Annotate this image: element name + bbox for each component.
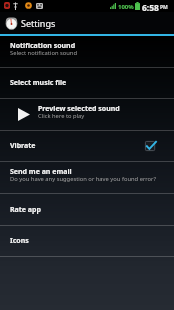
button[interactable]: Icons: [0, 226, 174, 256]
staticText: Preview selected sound: [38, 104, 120, 114]
staticText: Click here to play: [38, 112, 85, 120]
staticText: Send me an email: [10, 167, 72, 177]
staticText: PM: [160, 4, 168, 11]
button[interactable]: Rate app: [0, 194, 174, 225]
staticText: Icons: [10, 236, 29, 246]
staticText: Rate app: [10, 205, 41, 215]
staticText: Vibrate: [10, 141, 36, 151]
staticText: 6:58: [142, 2, 159, 14]
button[interactable]: Notification sound: [0, 36, 174, 67]
staticText: Settings: [21, 17, 56, 29]
button[interactable]: Send me an email: [0, 162, 174, 193]
button[interactable]: Vibrate: [0, 131, 174, 161]
button[interactable]: Preview selected sound: [0, 99, 174, 130]
staticText: 100%: [118, 3, 134, 11]
staticText: Select notification sound: [10, 49, 78, 57]
staticText: Select music file: [10, 78, 67, 88]
button[interactable]: Select music file: [0, 68, 174, 98]
staticText: Notification sound: [10, 41, 76, 51]
staticText: Do you have any suggestion or have you f…: [10, 175, 156, 183]
